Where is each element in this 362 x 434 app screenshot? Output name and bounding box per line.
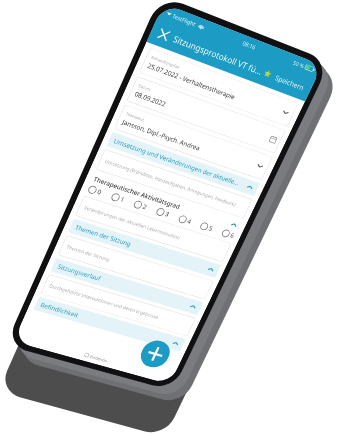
button[interactable]: Themen der Sitzung [58, 235, 214, 299]
staticText: Durchgeführte Interventionen und deren E… [48, 282, 160, 320]
button[interactable]: Befindlichkeit [33, 297, 186, 351]
button[interactable]: 1 [110, 192, 126, 204]
staticText: 08.09.2022 [133, 89, 168, 109]
button[interactable]: 4 [177, 214, 193, 226]
staticText: 6 [229, 231, 236, 240]
button[interactable]: Datum [127, 76, 285, 153]
button[interactable]: Themen der Sitzung [68, 219, 221, 278]
button[interactable]: 0 [87, 184, 103, 196]
staticText: 5 [207, 224, 214, 233]
staticText: Datum [138, 83, 152, 92]
button[interactable]: Umsetzung (Erprobtes, Hausaufgaben, Anre… [96, 149, 252, 218]
staticText: TestFlight [171, 12, 197, 28]
button[interactable]: 2 [132, 199, 148, 211]
staticText: Sitzungsprotokoll VT für... [171, 33, 264, 77]
staticText: Evidentia [89, 353, 108, 363]
button[interactable]: Favorit [259, 66, 276, 82]
staticText: Umsetzung und Veränderungen der aktuelle… [112, 136, 246, 189]
button[interactable]: Umsetzung und Veränderungen der aktuelle… [106, 132, 260, 196]
staticText: Speichern [274, 73, 306, 92]
button[interactable]: 5 [199, 221, 214, 233]
staticText: 4 [186, 217, 193, 226]
button[interactable]: Hinzufügen [136, 337, 174, 370]
button[interactable]: Therapeut [114, 104, 273, 180]
button[interactable]: Schliessen [152, 22, 176, 46]
staticText: 2 [141, 202, 148, 211]
button[interactable]: 3 [155, 207, 171, 219]
staticText: Veränderungen der aktuellen Lebenssituat… [83, 204, 182, 241]
staticText: Themen der Sitzung [65, 243, 111, 263]
staticText: Umsetzung (Erprobtes, Hausaufgaben, Anre… [104, 158, 237, 208]
button[interactable]: Veränderungen der aktuellen Lebenssituat… [75, 196, 231, 262]
button[interactable]: Durchgeführte Interventionen und deren E… [41, 274, 196, 336]
staticText: 08:16 [241, 39, 257, 51]
staticText: 3 [164, 209, 171, 219]
staticText: Therapeutischer Aktivitätsgrad [92, 174, 232, 227]
staticText: Jansson, Dipl.-Psych. Andrea [121, 117, 202, 152]
button[interactable]: Behandlungsfall [139, 48, 298, 127]
staticText: 0 [96, 187, 103, 196]
button[interactable]: 6 [220, 228, 236, 240]
staticText: Themen der Sitzung [74, 223, 207, 272]
staticText: 1 [119, 195, 126, 204]
button[interactable]: Speichern [270, 68, 309, 96]
staticText: Therapeut [125, 111, 145, 122]
staticText: Befindlichkeit [39, 301, 172, 345]
staticText: Sitzungsverlauf [56, 262, 189, 309]
button[interactable]: Sitzungsverlauf [51, 258, 203, 315]
staticText: Behandlungsfall [150, 54, 181, 70]
staticText: 50 % [292, 59, 306, 70]
staticText: 25.07.2022 - Verhaltenstherapie [146, 61, 237, 101]
